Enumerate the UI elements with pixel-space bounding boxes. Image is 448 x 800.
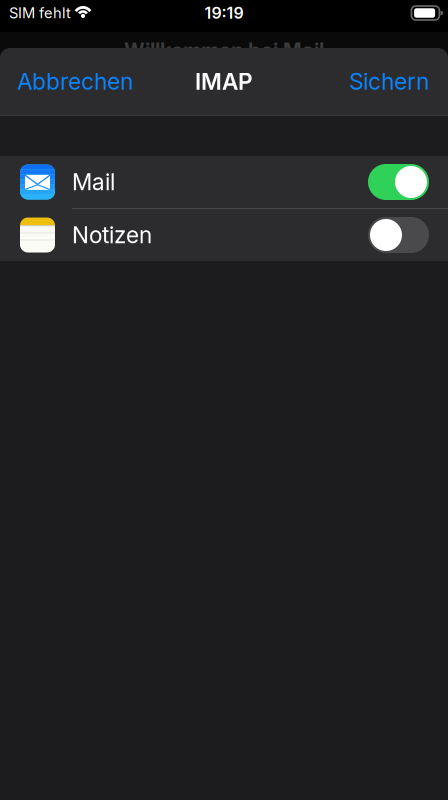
button[interactable]: Abbrechen <box>0 48 145 115</box>
staticText: Sichern <box>349 68 429 95</box>
button[interactable]: Notizen <box>0 209 448 261</box>
staticText: 19:19 <box>204 3 243 23</box>
staticText: Abbrechen <box>17 68 133 95</box>
staticText: Willkommen bei Mail <box>124 38 324 62</box>
staticText: Mail <box>72 168 115 196</box>
staticText: IMAP <box>195 68 253 95</box>
staticText: SIM fehlt <box>9 4 71 22</box>
button[interactable]: Sichern <box>337 48 448 115</box>
staticText: Notizen <box>72 221 152 249</box>
button[interactable]: Mail <box>0 156 448 208</box>
